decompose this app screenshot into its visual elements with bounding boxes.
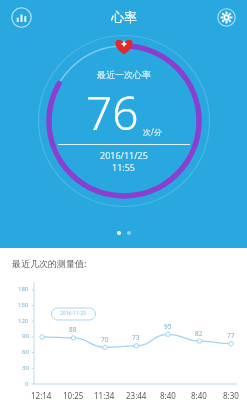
staticText: 心率 bbox=[111, 9, 137, 25]
staticText: 8:30 bbox=[223, 390, 239, 401]
button[interactable]: 最近一次心率 bbox=[37, 34, 211, 208]
staticText: 95 bbox=[164, 322, 172, 331]
staticText: 11:55 bbox=[112, 161, 136, 173]
staticText: 76 bbox=[86, 81, 139, 144]
button[interactable]: Page 2 bbox=[127, 231, 131, 235]
staticText: 77 bbox=[227, 331, 235, 340]
staticText: 150 bbox=[18, 301, 29, 309]
staticText: 30 bbox=[22, 364, 29, 372]
staticText: 10:25 bbox=[63, 390, 84, 401]
staticText: 90 bbox=[22, 332, 29, 340]
staticText: 12:14 bbox=[31, 390, 52, 401]
staticText: 8:40 bbox=[160, 390, 176, 401]
staticText: 23:44 bbox=[126, 390, 147, 401]
staticText: 60 bbox=[22, 348, 29, 356]
staticText: 70 bbox=[101, 335, 109, 344]
staticText: 120 bbox=[18, 317, 29, 325]
staticText: 88 bbox=[69, 325, 77, 334]
staticText: 最近几次的测量值: bbox=[12, 257, 87, 269]
button[interactable]: Settings bbox=[213, 4, 239, 30]
staticText: 82 bbox=[195, 329, 203, 338]
staticText: 8:40 bbox=[191, 390, 207, 401]
staticText: 73 bbox=[132, 333, 140, 342]
staticText: 最近一次心率 bbox=[97, 69, 151, 80]
staticText: 2016-11-25 bbox=[60, 310, 87, 317]
staticText: 2016/11/25 bbox=[100, 149, 148, 161]
button[interactable]: Statistics bbox=[8, 4, 34, 30]
staticText: 0 bbox=[25, 380, 29, 388]
button[interactable]: Page 1 bbox=[117, 231, 121, 235]
staticText: 180 bbox=[18, 285, 29, 293]
staticText: 11:34 bbox=[94, 390, 115, 401]
staticText: 次/分 bbox=[143, 126, 162, 137]
